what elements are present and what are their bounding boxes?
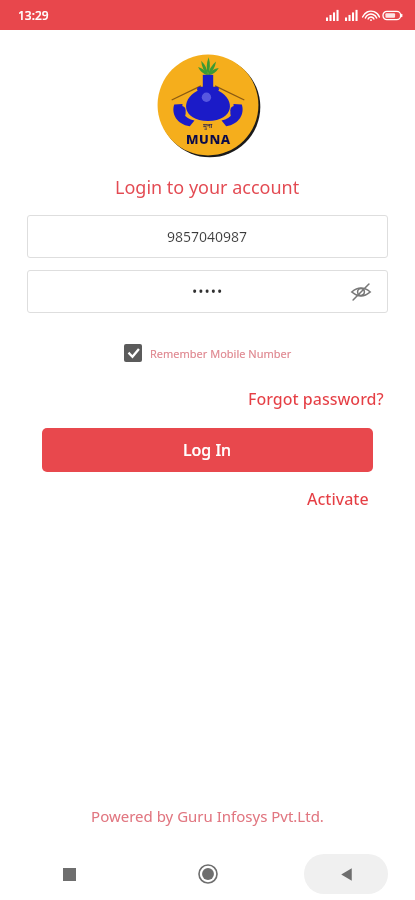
staticText: 9857040987 — [167, 227, 248, 246]
button[interactable]: Show password — [344, 275, 378, 309]
button[interactable]: Home — [139, 848, 277, 900]
staticText: Login to your account — [115, 175, 300, 200]
staticText: MUNA — [186, 130, 231, 148]
staticText: मुना — [203, 122, 213, 130]
button[interactable]: Forgot password? — [244, 384, 388, 414]
staticText: Log In — [183, 439, 232, 461]
button[interactable]: Activate — [303, 484, 373, 514]
staticText: Activate — [307, 488, 369, 510]
button[interactable]: Log In — [42, 428, 373, 472]
staticText: Forgot password? — [248, 388, 384, 410]
staticText: Remember Mobile Number — [150, 346, 292, 361]
staticText: Powered by Guru Infosys Pvt.Ltd. — [91, 806, 324, 826]
button[interactable]: 9857040987 — [27, 215, 388, 258]
button[interactable]: ••••• — [27, 270, 388, 313]
staticText: 13:29 — [18, 7, 49, 23]
staticText: ••••• — [192, 282, 224, 301]
button[interactable]: Recent apps — [0, 848, 139, 900]
button[interactable]: Back — [277, 848, 415, 900]
button[interactable]: Remember Mobile Number — [120, 340, 296, 366]
